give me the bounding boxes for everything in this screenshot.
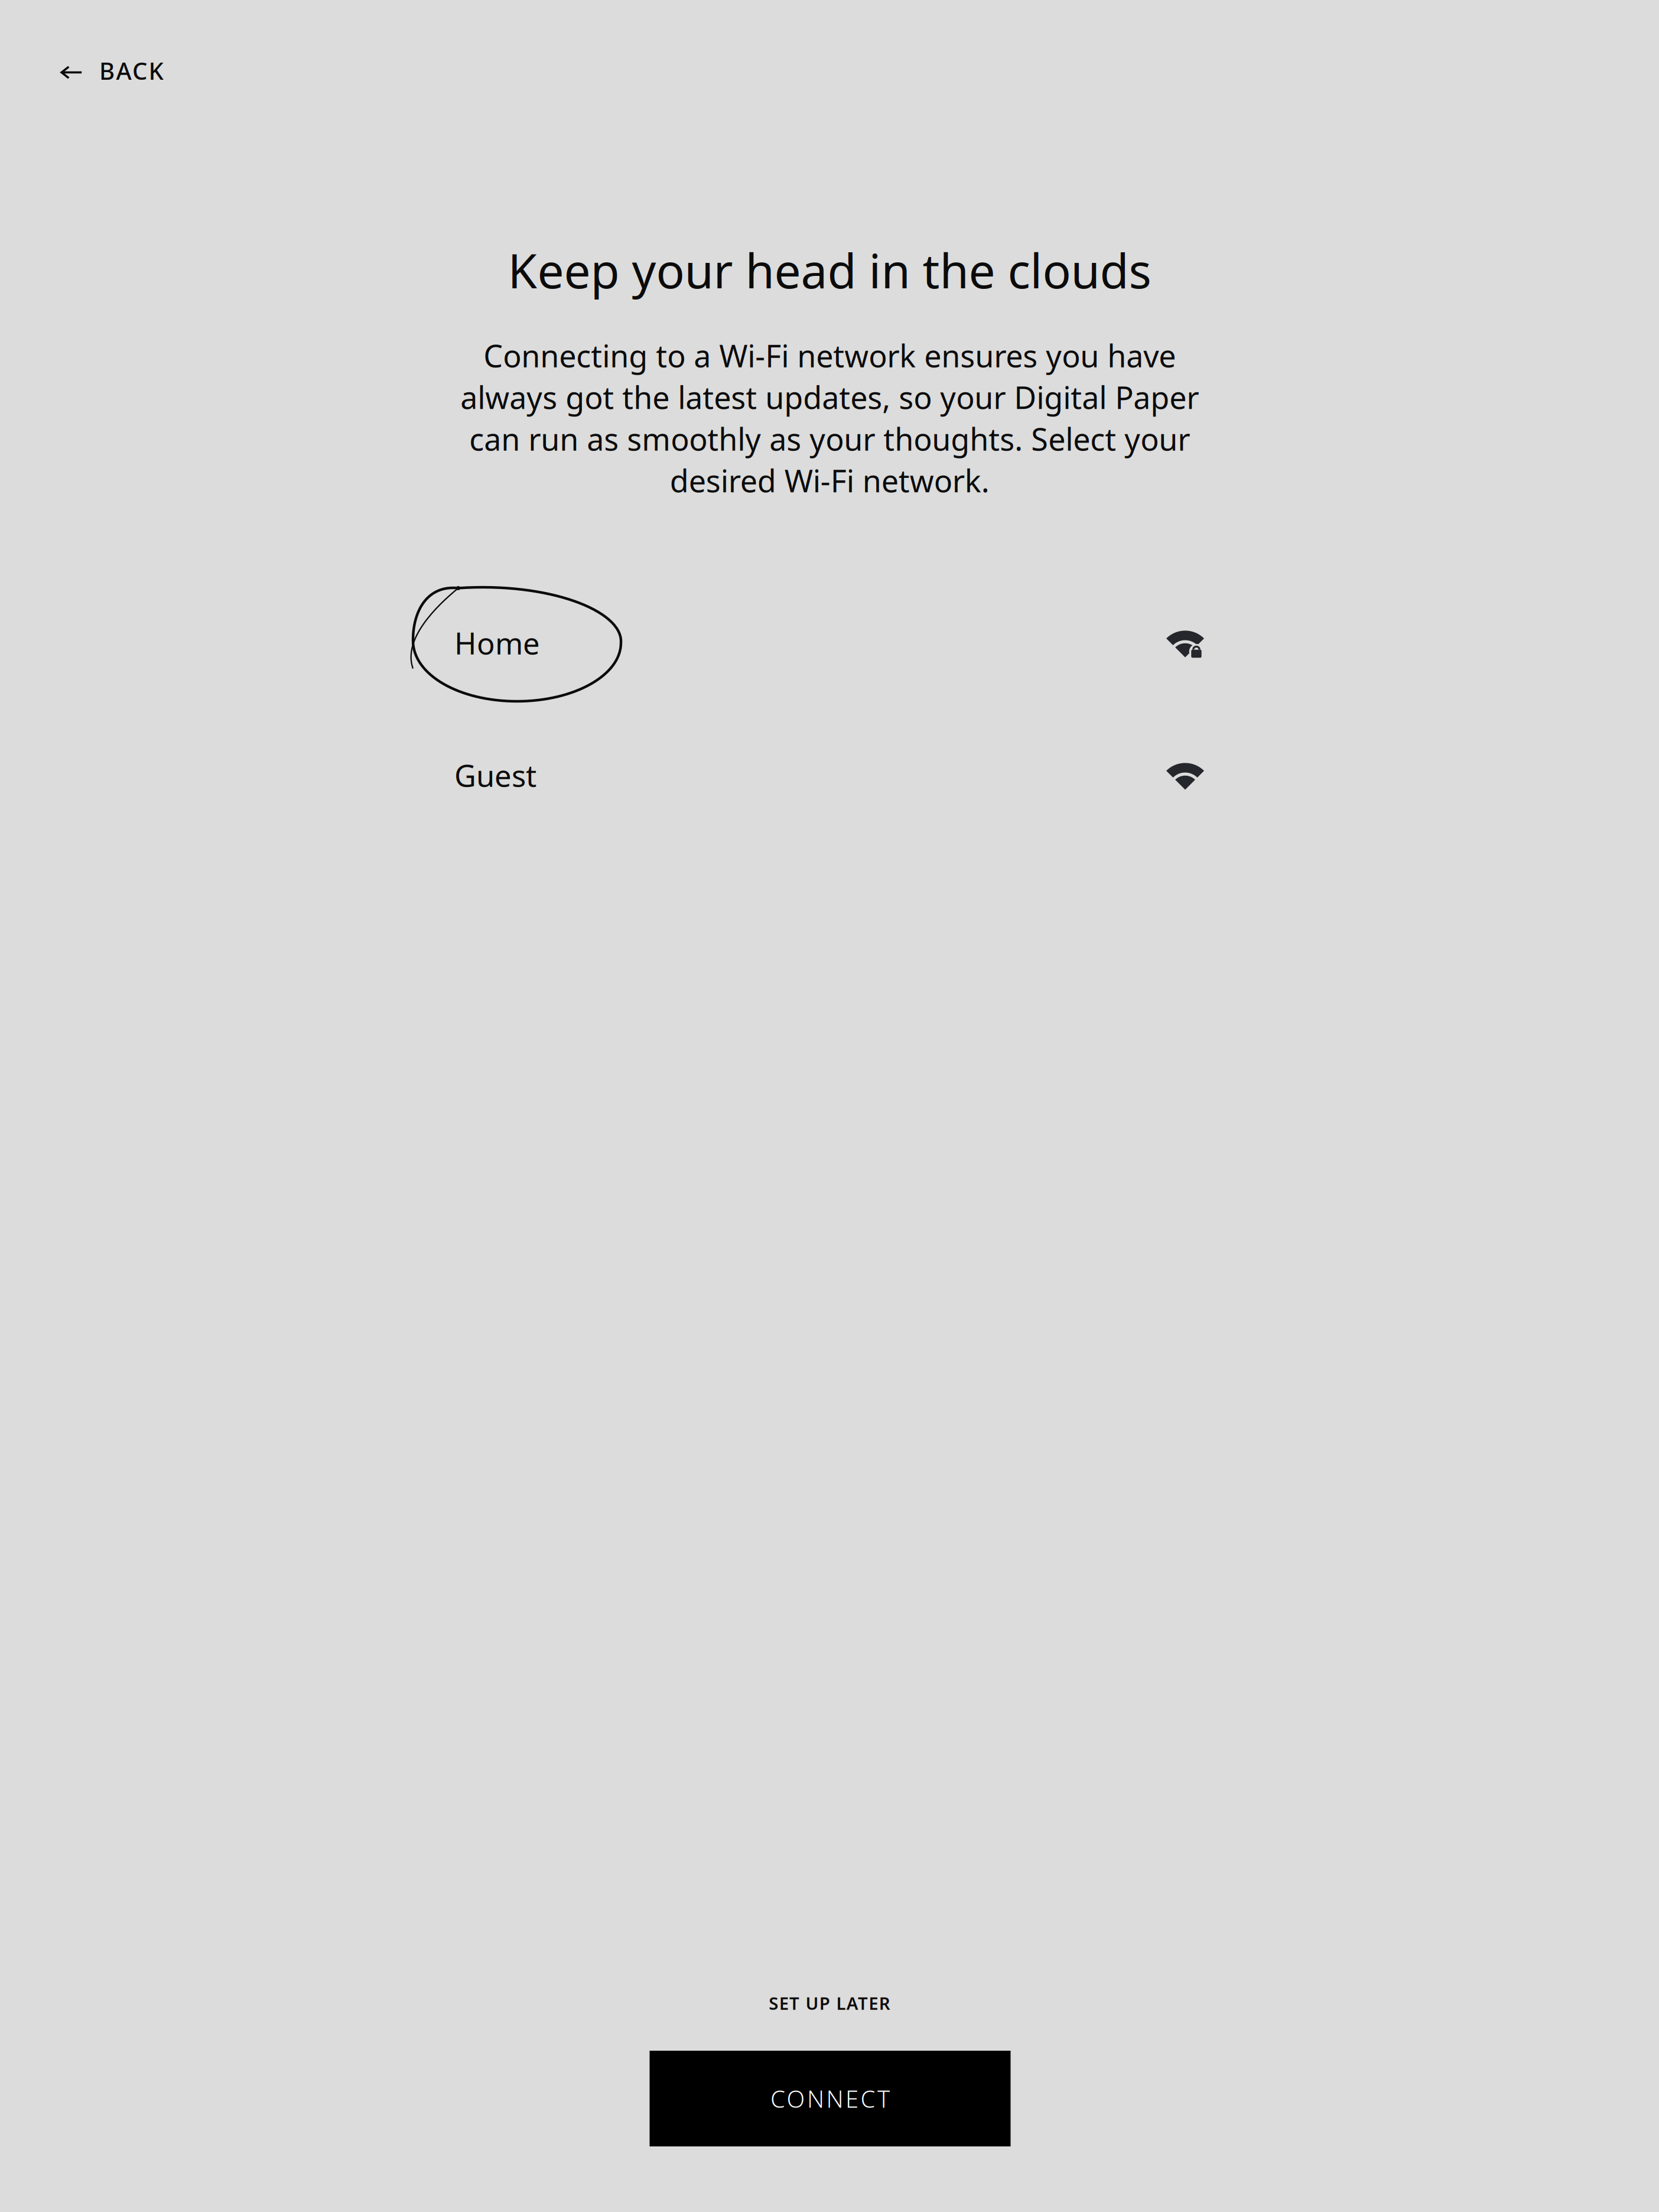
staticText: SET UP LATER xyxy=(769,1992,890,2015)
staticText: Connecting to a Wi-Fi network ensures yo… xyxy=(460,335,1199,501)
button[interactable]: Guest, open network xyxy=(378,713,1247,837)
staticText: Guest xyxy=(454,755,536,795)
button[interactable]: Back xyxy=(0,29,196,112)
button[interactable]: SET UP LATER xyxy=(674,1972,985,2035)
staticText: CONNECT xyxy=(770,2083,890,2114)
staticText: BACK xyxy=(99,55,163,86)
button[interactable]: Home, secured network xyxy=(378,581,1247,705)
button[interactable]: CONNECT xyxy=(650,2051,1011,2146)
staticText: Home xyxy=(454,623,540,663)
staticText: Keep your head in the clouds xyxy=(508,239,1151,301)
